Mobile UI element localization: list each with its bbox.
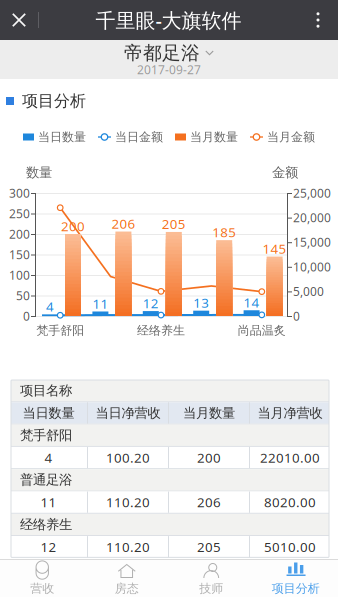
staticText: 5010.00 <box>264 538 316 556</box>
staticText: 当月数量 <box>190 130 238 144</box>
staticText: 200 <box>197 449 221 466</box>
staticText: 206 <box>111 215 135 232</box>
staticText: 15,000 <box>293 234 331 250</box>
button[interactable]: More options <box>298 0 338 40</box>
staticText: 金额 <box>272 164 298 181</box>
staticText: 当日数量 <box>22 405 74 421</box>
staticText: 帝都足浴 <box>124 41 200 64</box>
staticText: 当日金额 <box>115 130 163 144</box>
staticText: 200 <box>9 226 30 242</box>
staticText: 145 <box>263 240 287 257</box>
staticText: 200 <box>61 217 85 235</box>
staticText: 当月净营收 <box>257 405 322 421</box>
staticText: 当月数量 <box>183 405 235 421</box>
staticText: 4 <box>44 449 52 466</box>
staticText: 205 <box>162 215 186 233</box>
staticText: 2017-09-27 <box>137 61 201 77</box>
staticText: 千里眼-大旗软件 <box>95 7 241 33</box>
staticText: 300 <box>9 185 30 201</box>
staticText: 经络养生 <box>137 323 185 338</box>
staticText: 50 <box>16 287 30 303</box>
staticText: 0 <box>23 308 30 324</box>
button[interactable]: Close <box>0 0 38 40</box>
staticText: 普通足浴 <box>20 472 72 488</box>
staticText: 尚品温炙 <box>238 323 286 338</box>
staticText: 185 <box>212 223 236 241</box>
staticText: 25,000 <box>293 185 331 201</box>
staticText: 12 <box>40 538 56 556</box>
staticText: 11 <box>92 295 108 312</box>
staticText: 房态 <box>115 581 139 596</box>
staticText: 当日数量 <box>38 130 86 144</box>
staticText: 营收 <box>30 581 54 596</box>
staticText: 13 <box>193 294 209 311</box>
staticText: 100 <box>9 267 30 283</box>
staticText: 0 <box>293 308 300 324</box>
staticText: 梵手舒阳 <box>36 323 84 338</box>
staticText: 12 <box>143 294 159 312</box>
staticText: 5,000 <box>293 283 324 299</box>
button[interactable]: 营收 <box>0 560 84 597</box>
staticText: 22010.00 <box>260 449 320 466</box>
staticText: 205 <box>197 538 221 556</box>
button[interactable]: 技师 <box>169 560 253 597</box>
staticText: 项目分析 <box>272 581 320 596</box>
staticText: 20,000 <box>293 210 331 225</box>
staticText: 150 <box>9 246 30 262</box>
staticText: 数量 <box>26 164 52 181</box>
staticText: 14 <box>244 293 260 311</box>
button[interactable]: 房态 <box>84 560 169 597</box>
staticText: 250 <box>9 205 30 221</box>
staticText: 11 <box>40 493 56 511</box>
staticText: 110.20 <box>106 493 150 511</box>
staticText: 4 <box>46 297 54 315</box>
staticText: 206 <box>197 493 221 511</box>
staticText: 8020.00 <box>264 493 316 511</box>
staticText: 110.20 <box>106 538 150 556</box>
staticText: 项目分析 <box>22 91 86 111</box>
staticText: 10,000 <box>293 259 331 275</box>
staticText: 技师 <box>199 581 223 596</box>
staticText: 当月金额 <box>267 130 315 144</box>
staticText: 梵手舒阳 <box>20 427 72 443</box>
button[interactable]: 帝都足浴 <box>0 40 338 79</box>
staticText: 经络养生 <box>20 516 72 533</box>
staticText: 100.20 <box>106 449 150 466</box>
button[interactable]: 项目分析 <box>253 560 338 597</box>
staticText: 当日净营收 <box>95 405 160 421</box>
staticText: 项目名称 <box>20 382 72 399</box>
